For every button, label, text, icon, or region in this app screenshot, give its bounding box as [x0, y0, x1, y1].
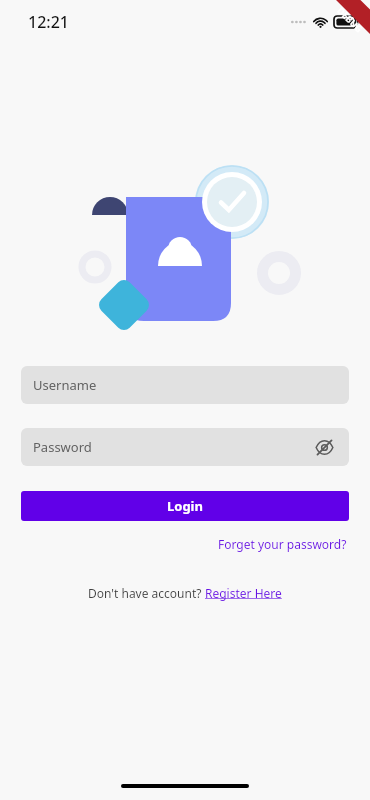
button[interactable]: Username [21, 366, 349, 404]
staticText: Login [167, 497, 203, 515]
button[interactable]: Toggle password visibility [311, 434, 337, 460]
staticText: 12:21 [28, 11, 69, 33]
staticText: DEBUG [335, 4, 366, 35]
button[interactable]: Forget your password? [216, 533, 349, 555]
staticText: Register Here [205, 585, 282, 601]
button[interactable]: Password [21, 428, 349, 466]
staticText: Password [33, 438, 92, 456]
button[interactable]: Register Here [205, 585, 282, 601]
staticText: Don't have account? [88, 585, 205, 601]
button[interactable]: Login [21, 491, 349, 521]
staticText: Forget your password? [218, 536, 347, 552]
staticText: Username [33, 376, 97, 394]
